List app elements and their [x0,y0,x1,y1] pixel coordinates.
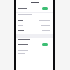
button[interactable] [16,6,53,10]
button[interactable] [16,42,53,46]
button[interactable] [16,39,53,40]
button[interactable] [16,14,53,15]
button[interactable] [16,25,53,26]
button[interactable] [16,50,53,51]
button[interactable] [16,30,53,31]
button[interactable] [16,53,53,54]
button[interactable] [16,20,53,21]
